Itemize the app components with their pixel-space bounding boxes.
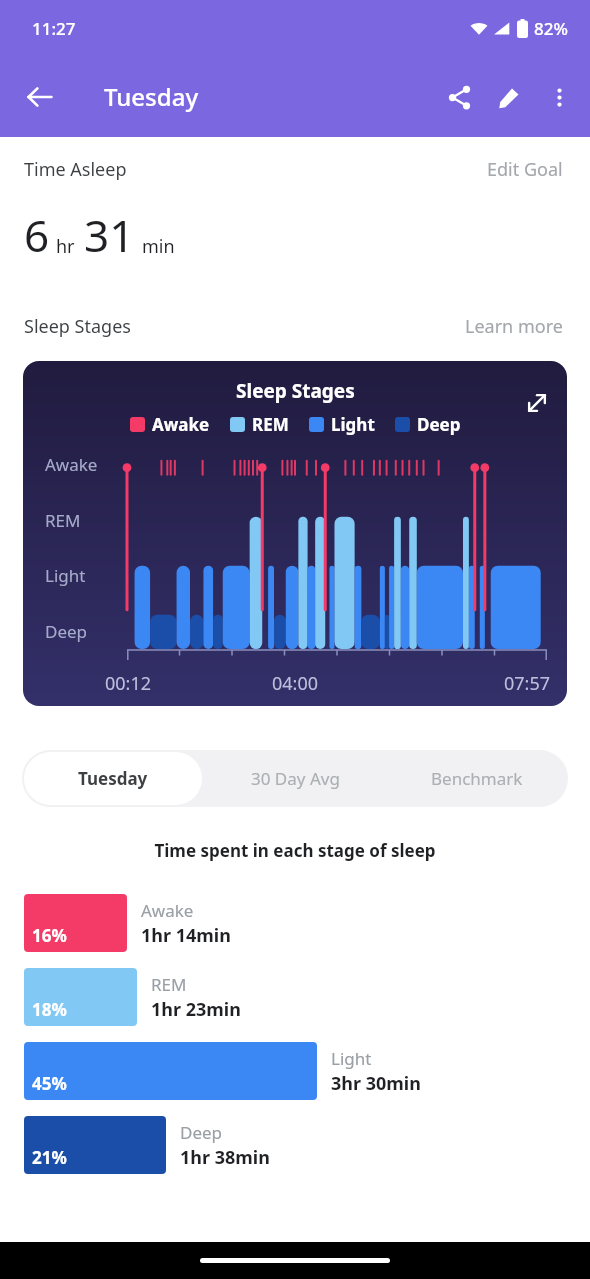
staticText: 21% [32, 1146, 67, 1169]
staticText: 1hr 14min [141, 923, 231, 948]
staticText: Light [331, 413, 375, 436]
button[interactable]: Expand chart [515, 381, 559, 425]
staticText: 00:12 [105, 671, 152, 696]
staticText: Deep [180, 1121, 223, 1144]
staticText: Edit Goal [487, 157, 563, 182]
staticText: 6 [24, 205, 50, 265]
staticText: 1hr 38min [180, 1145, 270, 1170]
button[interactable]: Tuesday [24, 752, 202, 805]
button[interactable]: Edit [484, 72, 534, 122]
staticText: 04:00 [272, 671, 319, 696]
staticText: Light [331, 1047, 372, 1070]
button[interactable]: More options [534, 72, 584, 122]
button[interactable]: 21% [24, 1116, 576, 1174]
staticText: Benchmark [431, 767, 523, 790]
staticText: Awake [141, 899, 194, 922]
staticText: min [142, 234, 175, 259]
staticText: Deep [45, 620, 88, 643]
staticText: 18% [32, 998, 67, 1021]
staticText: Time Asleep [24, 157, 127, 182]
button[interactable]: 30 Day Avg [204, 750, 386, 807]
staticText: REM [252, 413, 289, 436]
button[interactable]: Edit Goal [484, 154, 566, 185]
staticText: 82% [534, 17, 568, 40]
staticText: 16% [32, 924, 67, 947]
staticText: Light [45, 564, 86, 587]
staticText: Learn more [465, 314, 563, 339]
staticText: Tuesday [78, 767, 148, 790]
staticText: Tuesday [104, 80, 199, 113]
staticText: 45% [32, 1072, 67, 1095]
staticText: REM [151, 973, 187, 996]
staticText: Awake [152, 413, 210, 436]
staticText: 30 Day Avg [251, 767, 340, 790]
staticText: Awake [45, 453, 98, 476]
button[interactable]: Benchmark [386, 750, 568, 807]
button[interactable]: 16% [24, 894, 576, 952]
staticText: 1hr 23min [151, 997, 241, 1022]
button[interactable]: Learn more [462, 311, 566, 342]
staticText: 07:57 [504, 671, 551, 696]
button[interactable]: Sleep Stages [23, 361, 567, 706]
staticText: hr [56, 234, 75, 259]
staticText: Sleep Stages [236, 378, 355, 404]
staticText: REM [45, 509, 81, 532]
staticText: 11:27 [32, 17, 76, 40]
button[interactable]: 18% [24, 968, 576, 1026]
button[interactable]: 45% [24, 1042, 576, 1100]
button[interactable]: Share [434, 72, 484, 122]
button[interactable]: Back [16, 73, 64, 121]
staticText: 31 [84, 205, 135, 265]
staticText: 3hr 30min [331, 1071, 421, 1096]
staticText: Sleep Stages [24, 314, 131, 339]
staticText: Time spent in each stage of sleep [0, 839, 590, 862]
staticText: Deep [417, 413, 461, 436]
